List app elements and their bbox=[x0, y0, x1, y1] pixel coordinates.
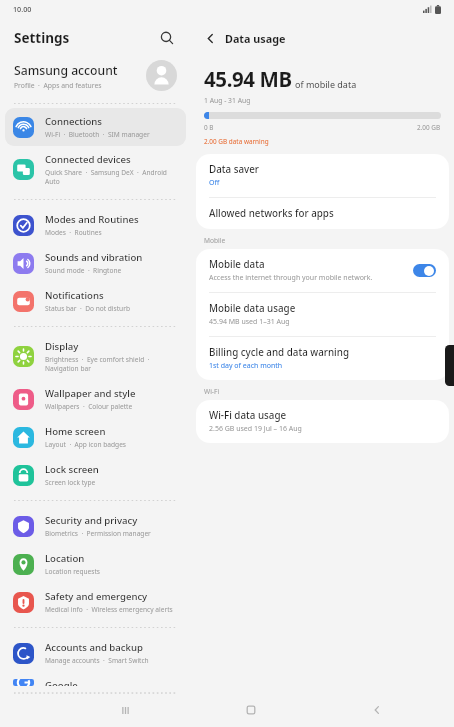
button[interactable]: Home screen bbox=[5, 418, 186, 456]
button[interactable]: Safety and emergency bbox=[5, 583, 186, 621]
button[interactable]: Recents bbox=[108, 693, 142, 727]
staticText: Mobile data bbox=[209, 258, 265, 271]
staticText: Display bbox=[45, 340, 79, 353]
staticText: 2.56 GB used 19 Jul – 16 Aug bbox=[209, 424, 302, 434]
staticText: Brightness · Eye comfort shield · Naviga… bbox=[45, 355, 178, 373]
staticText: Data saver bbox=[209, 163, 259, 176]
button[interactable]: Accounts and backup bbox=[5, 634, 186, 672]
staticText: Security and privacy bbox=[45, 514, 138, 527]
staticText: Manage accounts · Smart Switch bbox=[45, 656, 149, 665]
button[interactable]: Display bbox=[5, 333, 186, 380]
staticText: Settings bbox=[14, 29, 70, 47]
staticText: Layout · App icon badges bbox=[45, 440, 127, 449]
staticText: 2.00 GB bbox=[417, 123, 441, 132]
staticText: of mobile data bbox=[295, 78, 357, 90]
button[interactable]: Notifications bbox=[5, 282, 186, 320]
button[interactable]: Sounds and vibration bbox=[5, 244, 186, 282]
staticText: Wi-Fi data usage bbox=[209, 409, 287, 422]
button[interactable]: Home bbox=[234, 693, 268, 727]
staticText: Google bbox=[45, 679, 78, 686]
staticText: Location bbox=[45, 552, 85, 565]
staticText: Allowed networks for apps bbox=[209, 207, 334, 220]
staticText: Location requests bbox=[45, 567, 101, 576]
staticText: 45.94 MB bbox=[204, 65, 292, 93]
button[interactable]: Modes and Routines bbox=[5, 206, 186, 244]
staticText: Wi-Fi · Bluetooth · SIM manager bbox=[45, 130, 150, 139]
staticText: Sound mode · Ringtone bbox=[45, 266, 122, 275]
staticText: Biometrics · Permission manager bbox=[45, 529, 151, 538]
staticText: Off bbox=[209, 178, 220, 188]
button[interactable]: Back bbox=[199, 27, 221, 49]
staticText: Sounds and vibration bbox=[45, 251, 143, 264]
staticText: Wi-Fi bbox=[204, 387, 220, 396]
staticText: Access the internet through your mobile … bbox=[209, 273, 373, 283]
staticText: 45.94 MB used 1–31 Aug bbox=[209, 317, 290, 327]
staticText: Samsung account bbox=[14, 62, 118, 79]
button[interactable]: Lock screen bbox=[5, 456, 186, 494]
staticText: Medical info · Wireless emergency alerts bbox=[45, 605, 173, 614]
staticText: Safety and emergency bbox=[45, 590, 148, 603]
button[interactable]: Mobile data on bbox=[413, 264, 436, 277]
button[interactable]: Wallpaper and style bbox=[5, 380, 186, 418]
button[interactable]: Connected devices bbox=[5, 146, 186, 193]
staticText: Mobile bbox=[204, 236, 226, 245]
staticText: 2.00 GB data warning bbox=[204, 137, 269, 146]
staticText: Connections bbox=[45, 115, 103, 128]
staticText: 1 Aug - 31 Aug bbox=[204, 96, 251, 105]
staticText: Mobile data usage bbox=[209, 302, 296, 315]
button[interactable]: Back bbox=[360, 693, 394, 727]
staticText: Modes and Routines bbox=[45, 213, 139, 226]
button[interactable]: Allowed networks for apps bbox=[196, 198, 449, 229]
staticText: Connected devices bbox=[45, 153, 131, 166]
button[interactable]: Wi-Fi data usage bbox=[196, 400, 449, 443]
staticText: Wallpaper and style bbox=[45, 387, 136, 400]
staticText: Wallpapers · Colour palette bbox=[45, 402, 133, 411]
button[interactable]: Billing cycle and data warning bbox=[196, 337, 449, 380]
staticText: Profile · Apps and features bbox=[14, 81, 102, 90]
staticText: 1st day of each month bbox=[209, 361, 283, 371]
staticText: Modes · Routines bbox=[45, 228, 102, 237]
button[interactable]: Connections bbox=[5, 108, 186, 146]
staticText: 10.00 bbox=[13, 4, 32, 14]
staticText: Home screen bbox=[45, 425, 106, 438]
staticText: Quick Share · Samsung DeX · Android Auto bbox=[45, 168, 178, 186]
button[interactable]: Google bbox=[5, 672, 186, 693]
button[interactable]: Security and privacy bbox=[5, 507, 186, 545]
staticText: Screen lock type bbox=[45, 478, 96, 487]
button[interactable]: Mobile data usage bbox=[196, 293, 449, 336]
button[interactable]: Mobile data bbox=[196, 249, 449, 292]
button[interactable]: Search settings bbox=[155, 26, 179, 50]
button[interactable]: Location bbox=[5, 545, 186, 583]
staticText: Accounts and backup bbox=[45, 641, 143, 654]
staticText: Status bar · Do not disturb bbox=[45, 304, 130, 313]
button[interactable]: Data saver bbox=[196, 154, 449, 197]
staticText: Billing cycle and data warning bbox=[209, 346, 349, 359]
button[interactable]: Samsung account bbox=[0, 56, 191, 99]
staticText: Data usage bbox=[225, 31, 286, 46]
button[interactable]: Edge panel handle bbox=[445, 345, 454, 386]
staticText: Lock screen bbox=[45, 463, 99, 476]
staticText: Notifications bbox=[45, 289, 104, 302]
staticText: 0 B bbox=[204, 123, 214, 132]
